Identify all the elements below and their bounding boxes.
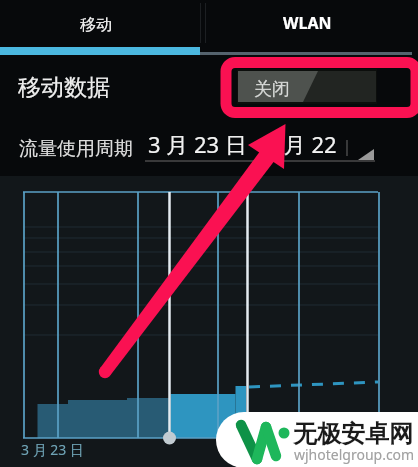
staticText: wjhotelgroup.com [294, 445, 415, 464]
staticText: WLAN [283, 12, 332, 34]
button[interactable]: WLAN [206, 0, 418, 55]
staticText: 移动 [80, 15, 112, 35]
button[interactable]: 关闭 [237, 69, 377, 104]
button[interactable]: 移动 [0, 0, 200, 55]
staticText: 关闭 [254, 78, 290, 101]
staticText: 3 月 23 日 [21, 440, 84, 459]
staticText: 移动数据 [18, 73, 110, 102]
staticText: 流量使用周期 [19, 137, 133, 161]
staticText: 无极安卓网 [293, 419, 413, 449]
button[interactable]: 3 月 23 日 - 4 月 22 [145, 128, 378, 168]
staticText: 3 月 23 日 - 4 月 22 [148, 129, 337, 159]
